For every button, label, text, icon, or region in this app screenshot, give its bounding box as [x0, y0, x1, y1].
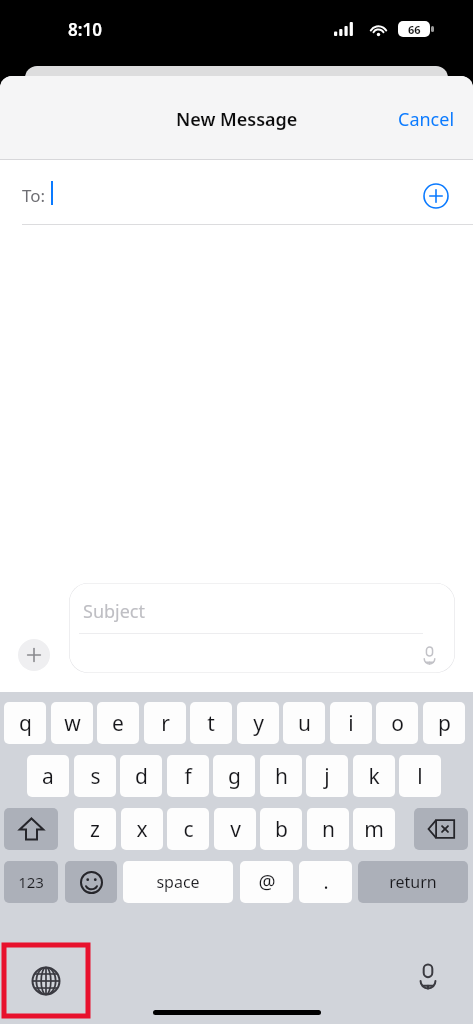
staticText: p: [438, 709, 451, 738]
staticText: m: [364, 815, 384, 844]
staticText: c: [183, 815, 194, 844]
button[interactable]: [65, 861, 117, 903]
staticText: 123: [18, 872, 44, 892]
staticText: Cancel: [398, 107, 455, 132]
staticText: q: [19, 709, 32, 738]
staticText: u: [298, 709, 311, 738]
button[interactable]: b: [260, 808, 302, 850]
staticText: 66: [408, 22, 421, 37]
button[interactable]: .: [299, 861, 352, 903]
staticText: r: [161, 709, 170, 738]
button[interactable]: [4, 808, 58, 850]
button[interactable]: w: [51, 702, 93, 744]
button[interactable]: Add attachment: [18, 639, 50, 671]
button[interactable]: space: [123, 861, 233, 903]
button[interactable]: Change keyboard language: [4, 945, 88, 1016]
button[interactable]: n: [307, 808, 349, 850]
staticText: .: [323, 869, 329, 895]
button[interactable]: e: [97, 702, 139, 744]
button[interactable]: j: [306, 755, 348, 797]
staticText: return: [389, 871, 437, 893]
button[interactable]: r: [144, 702, 186, 744]
staticText: s: [90, 762, 101, 791]
staticText: Subject: [83, 599, 146, 624]
staticText: f: [184, 762, 192, 791]
staticText: e: [112, 709, 124, 738]
button[interactable]: o: [376, 702, 418, 744]
staticText: t: [207, 709, 215, 738]
button[interactable]: 123: [4, 861, 58, 903]
button[interactable]: [414, 808, 468, 850]
button[interactable]: q: [4, 702, 46, 744]
button[interactable]: Subject: [69, 583, 455, 673]
staticText: o: [391, 709, 404, 738]
staticText: k: [368, 762, 380, 791]
staticText: w: [64, 709, 81, 738]
staticText: @: [258, 869, 276, 895]
button[interactable]: g: [213, 755, 255, 797]
button[interactable]: i: [330, 702, 372, 744]
button[interactable]: return: [358, 861, 468, 903]
button[interactable]: s: [74, 755, 116, 797]
staticText: To:: [22, 184, 46, 207]
button[interactable]: t: [190, 702, 232, 744]
button[interactable]: Add contact: [418, 178, 454, 214]
button[interactable]: To:: [0, 160, 473, 225]
staticText: New Message: [176, 107, 298, 132]
staticText: h: [275, 762, 288, 791]
staticText: space: [156, 871, 200, 893]
button[interactable]: d: [120, 755, 162, 797]
staticText: d: [135, 762, 148, 791]
staticText: l: [417, 762, 423, 791]
button[interactable]: y: [237, 702, 279, 744]
staticText: i: [348, 709, 354, 738]
button[interactable]: h: [260, 755, 302, 797]
button[interactable]: v: [214, 808, 256, 850]
button[interactable]: x: [121, 808, 163, 850]
staticText: n: [322, 815, 335, 844]
button[interactable]: Dictate: [413, 638, 445, 670]
button[interactable]: l: [399, 755, 441, 797]
button[interactable]: u: [283, 702, 325, 744]
button[interactable]: Dictation: [404, 950, 452, 1000]
staticText: b: [275, 815, 288, 844]
button[interactable]: @: [240, 861, 293, 903]
button[interactable]: a: [27, 755, 69, 797]
staticText: g: [228, 762, 241, 791]
button[interactable]: c: [167, 808, 209, 850]
staticText: v: [230, 815, 241, 844]
button[interactable]: f: [167, 755, 209, 797]
staticText: j: [324, 762, 330, 791]
staticText: z: [90, 815, 100, 844]
button[interactable]: m: [353, 808, 395, 850]
staticText: y: [253, 709, 264, 738]
button[interactable]: z: [74, 808, 116, 850]
staticText: x: [136, 815, 148, 844]
button[interactable]: Cancel: [380, 99, 473, 140]
button[interactable]: p: [423, 702, 465, 744]
staticText: 8:10: [68, 18, 102, 41]
button[interactable]: k: [353, 755, 395, 797]
staticText: a: [42, 762, 54, 791]
